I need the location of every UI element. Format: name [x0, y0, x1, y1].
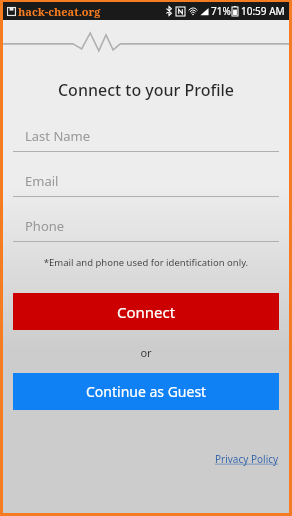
- button[interactable]: Phone: [13, 211, 279, 242]
- button[interactable]: Email: [13, 166, 279, 197]
- staticText: Phone: [25, 217, 65, 235]
- button[interactable]: Last Name: [13, 121, 279, 152]
- staticText: Connect to your Profile: [3, 79, 289, 101]
- staticText: Connect: [117, 302, 176, 322]
- button[interactable]: Connect: [13, 293, 279, 330]
- staticText: Continue as Guest: [86, 382, 207, 401]
- button[interactable]: Privacy Policy: [215, 452, 279, 466]
- staticText: Email: [25, 172, 59, 190]
- staticText: *Email and phone used for identification…: [3, 256, 289, 269]
- staticText: hack-cheat.org: [18, 4, 101, 19]
- staticText: Last Name: [25, 127, 91, 145]
- staticText: 10:59 AM: [241, 4, 285, 18]
- button[interactable]: Continue as Guest: [13, 373, 279, 410]
- staticText: 71%: [211, 4, 231, 18]
- staticText: Privacy Policy: [215, 452, 279, 466]
- staticText: or: [3, 345, 289, 360]
